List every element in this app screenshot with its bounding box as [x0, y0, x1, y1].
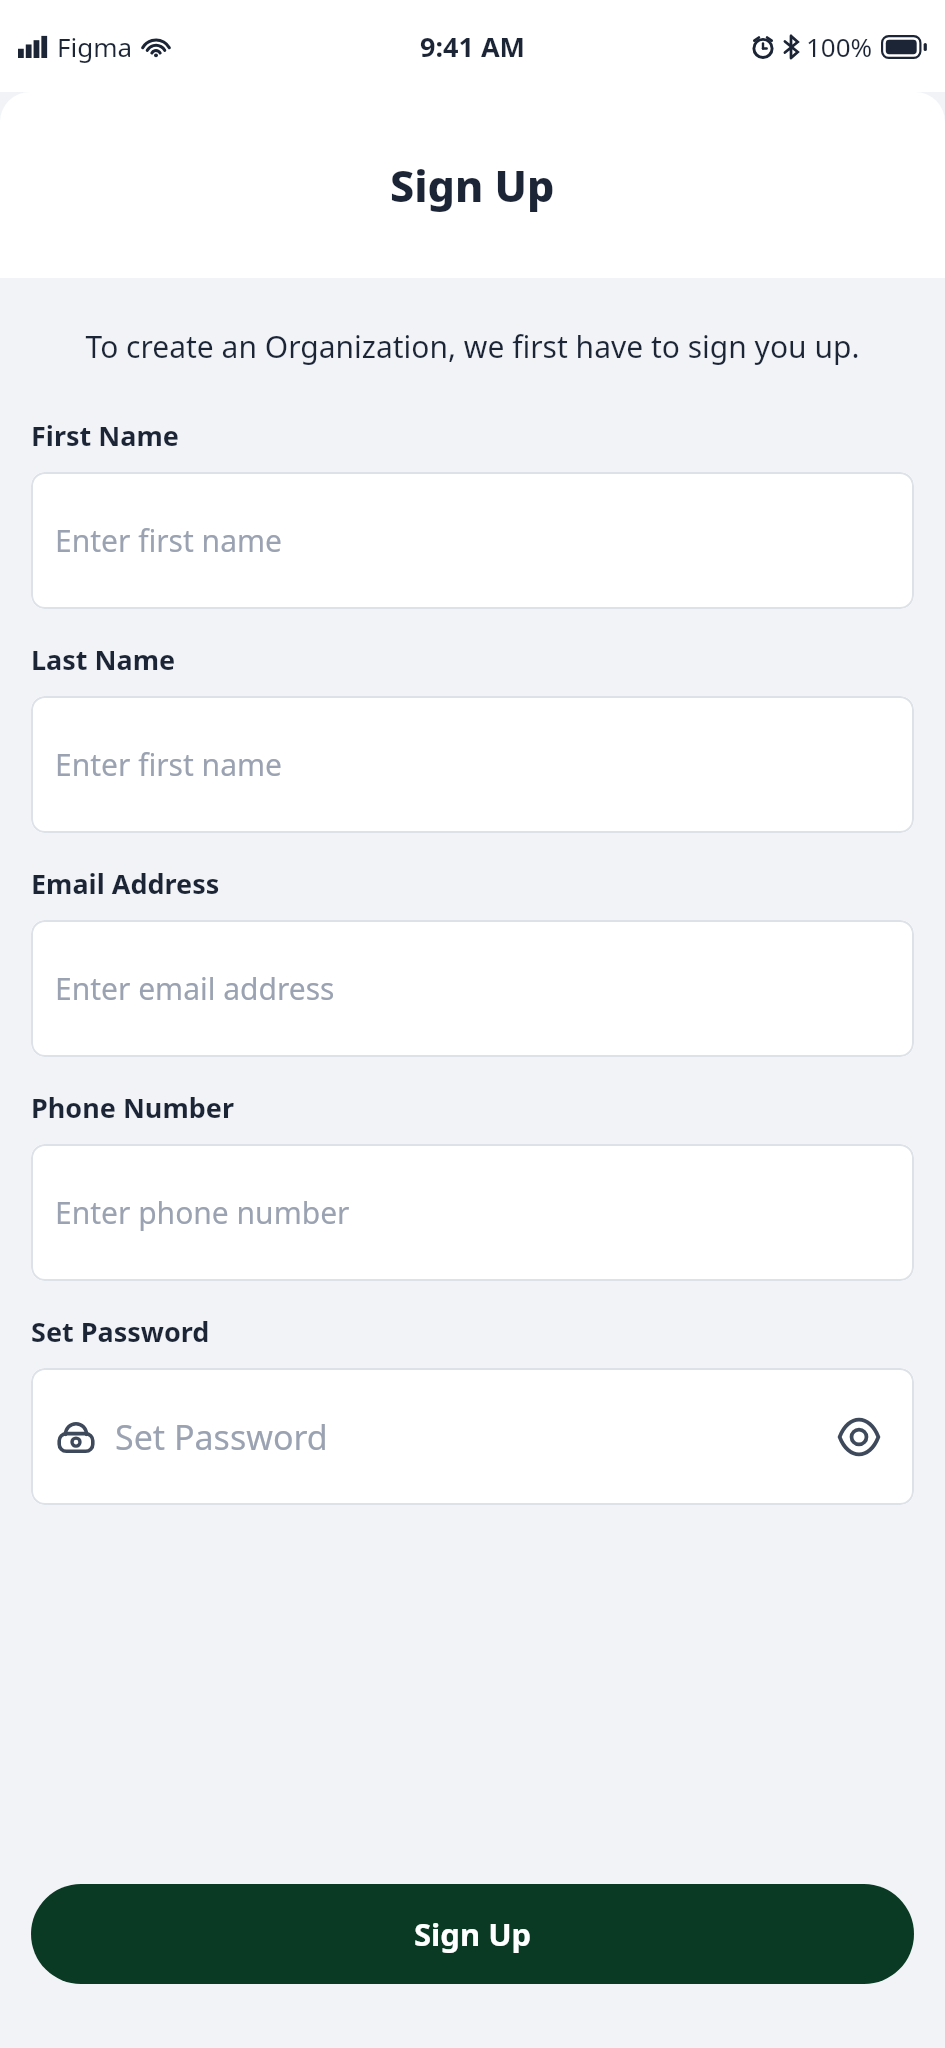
- staticText: Enter email address: [55, 968, 335, 1009]
- button[interactable]: Set Password: [31, 1368, 914, 1505]
- staticText: Phone Number: [31, 1089, 234, 1126]
- staticText: Email Address: [31, 865, 220, 902]
- staticText: Set Password: [115, 1414, 328, 1460]
- staticText: Enter first name: [55, 520, 282, 561]
- staticText: Last Name: [31, 641, 176, 678]
- staticText: To create an Organization, we first have…: [52, 326, 893, 367]
- staticText: 100%: [806, 29, 873, 64]
- staticText: Enter phone number: [55, 1192, 350, 1233]
- staticText: 9:41 AM: [420, 28, 526, 65]
- staticText: First Name: [31, 417, 179, 454]
- staticText: Figma: [57, 29, 133, 64]
- staticText: Sign Up: [414, 1913, 532, 1955]
- button[interactable]: Sign Up: [31, 1884, 914, 1984]
- staticText: Enter first name: [55, 744, 282, 785]
- button[interactable]: Enter first name: [31, 472, 914, 609]
- staticText: Set Password: [31, 1313, 210, 1350]
- button[interactable]: Enter first name: [31, 696, 914, 833]
- staticText: Sign Up: [390, 156, 555, 215]
- button[interactable]: Show password: [824, 1402, 894, 1472]
- button[interactable]: Enter email address: [31, 920, 914, 1057]
- button[interactable]: Enter phone number: [31, 1144, 914, 1281]
